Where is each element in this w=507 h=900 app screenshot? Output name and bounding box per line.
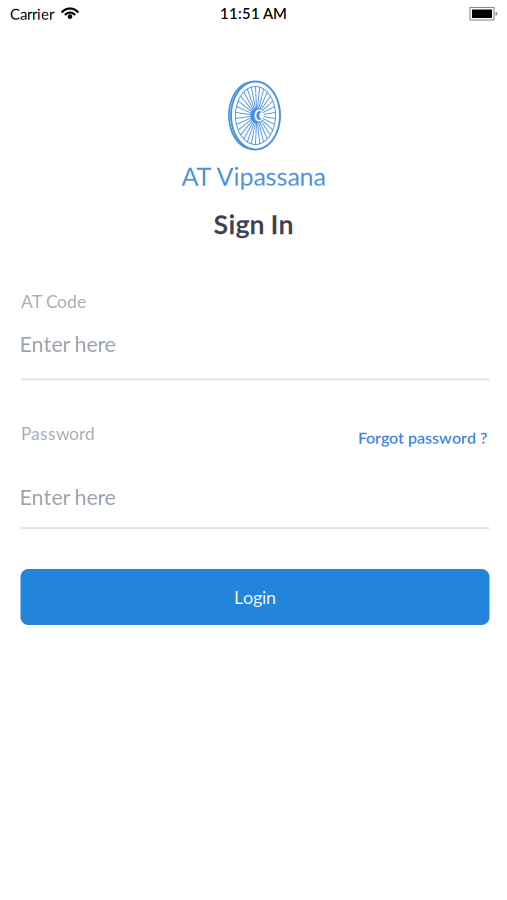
staticText: Login xyxy=(234,586,276,608)
staticText: AT Code xyxy=(21,291,86,312)
staticText: 11:51 AM xyxy=(220,4,287,22)
staticText: Password xyxy=(21,423,95,444)
staticText: Enter here xyxy=(19,484,115,510)
button[interactable]: Login xyxy=(20,569,489,625)
staticText: Enter here xyxy=(19,331,115,357)
staticText: Carrier xyxy=(10,5,54,23)
staticText: Forgot password ? xyxy=(358,428,487,447)
staticText: Sign In xyxy=(213,208,293,240)
staticText: AT Vipassana xyxy=(181,161,325,191)
button[interactable]: Forgot password ? xyxy=(358,428,487,447)
